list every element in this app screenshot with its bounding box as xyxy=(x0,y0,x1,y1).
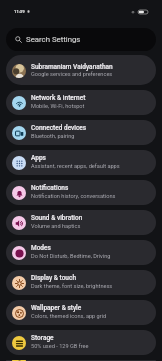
staticText: 50% used - 129 GB free xyxy=(31,343,89,350)
staticText: 11:39 xyxy=(14,9,25,14)
staticText: Volume and haptics xyxy=(31,223,81,230)
staticText: Sound & vibration xyxy=(31,214,83,222)
staticText: Network & internet xyxy=(31,94,86,102)
button[interactable]: Apps xyxy=(6,150,156,175)
button[interactable]: Modes xyxy=(6,240,156,265)
staticText: Do Not Disturb, Bedtime, Driving xyxy=(31,253,111,260)
staticText: Wallpaper & style xyxy=(31,304,82,312)
staticText: Search Settings xyxy=(26,35,81,44)
staticText: Bluetooth, pairing xyxy=(31,133,75,140)
button[interactable]: Sound & vibration xyxy=(6,210,156,235)
staticText: Google services and preferences xyxy=(31,71,113,78)
staticText: Storage xyxy=(31,334,54,342)
staticText: Apps xyxy=(31,154,46,162)
staticText: Notifications xyxy=(31,184,69,192)
staticText: Notification history, conversations xyxy=(31,193,116,200)
button[interactable]: Back up or copy data xyxy=(6,360,156,361)
button[interactable]: Search Settings xyxy=(6,28,156,51)
staticText: Assistant, recent apps, default apps xyxy=(31,163,120,170)
staticText: Mobile, Wi-Fi, hotspot xyxy=(31,103,85,110)
staticText: Connected devices xyxy=(31,124,87,132)
staticText: Modes xyxy=(31,244,51,252)
button[interactable]: Notifications xyxy=(6,180,156,205)
button[interactable]: Wallpaper & style xyxy=(6,300,156,325)
button[interactable]: Network & internet xyxy=(6,90,156,115)
staticText: Dark theme, font size, brightness xyxy=(31,283,113,290)
staticText: Display & touch xyxy=(31,274,76,282)
staticText: Subramaniam Vaidyanathan xyxy=(31,63,113,71)
button[interactable]: Connected devices xyxy=(6,120,156,145)
button[interactable]: Display & touch xyxy=(6,270,156,295)
staticText: Colors, themed icons, app grid xyxy=(31,313,107,320)
button[interactable]: Subramaniam Vaidyanathan xyxy=(6,55,156,85)
button[interactable]: Storage xyxy=(6,330,156,355)
